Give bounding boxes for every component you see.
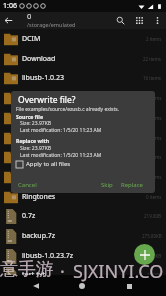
staticText: 4 items — [146, 154, 162, 160]
button[interactable]: Music — [0, 108, 166, 128]
staticText: 2 items — [146, 36, 162, 42]
staticText: test.txt — [22, 270, 147, 280]
staticText: 16 items — [143, 75, 162, 81]
button[interactable]: Apply to all files — [15, 159, 72, 169]
staticText: Pictures — [22, 152, 146, 162]
staticText: File examples/source/ezusb.c already exi… — [16, 106, 120, 113]
staticText: 219.80B — [144, 213, 162, 219]
staticText: Movies — [22, 93, 146, 103]
staticText: Last modification: 1/5/20 11:23 AM — [20, 152, 102, 159]
staticText: Size: 23.97KB — [20, 120, 51, 127]
staticText: Skip — [101, 181, 113, 189]
staticText: libusb-1.0.23.7z — [22, 251, 144, 261]
staticText: Apply to all files — [26, 160, 71, 168]
staticText: 0 items — [146, 95, 162, 101]
staticText: Size: 23.97KB — [20, 145, 51, 152]
staticText: Notifications — [22, 133, 146, 143]
staticText: Cancel — [18, 181, 37, 189]
button[interactable]: Back — [26, 276, 46, 296]
button[interactable]: More options — [149, 12, 166, 29]
button[interactable]: Replace — [119, 179, 145, 191]
staticText: 22 items — [143, 56, 162, 62]
button[interactable]: Change view — [130, 12, 149, 29]
staticText: Source file — [16, 113, 44, 120]
button[interactable]: Pictures — [0, 147, 166, 167]
staticText: SJXINYI.CO — [73, 259, 164, 284]
staticText: 12.00B — [147, 272, 162, 278]
staticText: Music — [22, 113, 146, 123]
staticText: Ringtones — [22, 192, 146, 202]
staticText: 275.80KB — [142, 233, 162, 239]
staticText: /storage/emulated — [27, 21, 76, 28]
staticText: Download — [22, 54, 143, 64]
button[interactable]: Cancel — [16, 179, 39, 191]
button[interactable]: backup.7z — [0, 226, 166, 246]
button[interactable]: Notifications — [0, 128, 166, 148]
staticText: Replace — [121, 181, 143, 189]
staticText: Replace with — [16, 137, 50, 144]
button[interactable]: Podcasts — [0, 167, 166, 187]
button[interactable]: test.txt — [0, 265, 166, 285]
button[interactable]: Home — [72, 276, 92, 296]
staticText: Overwrite file? — [18, 94, 76, 106]
staticText: 0 items — [146, 115, 162, 121]
staticText: DCIM — [22, 34, 146, 44]
button[interactable]: Add — [134, 244, 155, 265]
button[interactable]: Recents — [119, 276, 139, 296]
staticText: 0 items — [146, 135, 162, 141]
staticText: 93.00KB — [144, 253, 162, 259]
button[interactable]: Movies — [0, 88, 166, 108]
button[interactable]: libusb-1.0.23 — [0, 68, 166, 88]
button[interactable]: Ringtones — [0, 187, 166, 207]
button[interactable]: 0.7z — [0, 206, 166, 226]
button[interactable]: Download — [0, 49, 166, 69]
staticText: 0.7z — [22, 211, 144, 221]
staticText: 0 items — [146, 194, 162, 200]
staticText: 1:06 — [3, 1, 17, 11]
staticText: libusb-1.0.23 — [22, 73, 143, 83]
button[interactable]: libusb-1.0.23.7z — [0, 246, 166, 266]
staticText: Last modification: 1/5/20 11:23 AM — [20, 127, 102, 134]
staticText: 意手游 — [0, 258, 54, 281]
staticText: · — [60, 259, 65, 284]
button[interactable]: Search — [111, 12, 130, 29]
staticText: 0 — [27, 11, 32, 21]
button[interactable]: DCIM — [0, 29, 166, 49]
button[interactable]: Skip — [99, 179, 115, 191]
staticText: backup.7z — [22, 231, 142, 241]
staticText: 0 items — [146, 174, 162, 180]
button[interactable]: Back — [0, 12, 17, 29]
